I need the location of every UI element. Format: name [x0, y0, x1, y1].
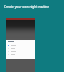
staticText: Create your own night routine	[4, 5, 50, 9]
button[interactable]	[6, 47, 35, 50]
button[interactable]	[6, 50, 35, 53]
button[interactable]	[6, 53, 35, 56]
button[interactable]	[6, 44, 35, 47]
